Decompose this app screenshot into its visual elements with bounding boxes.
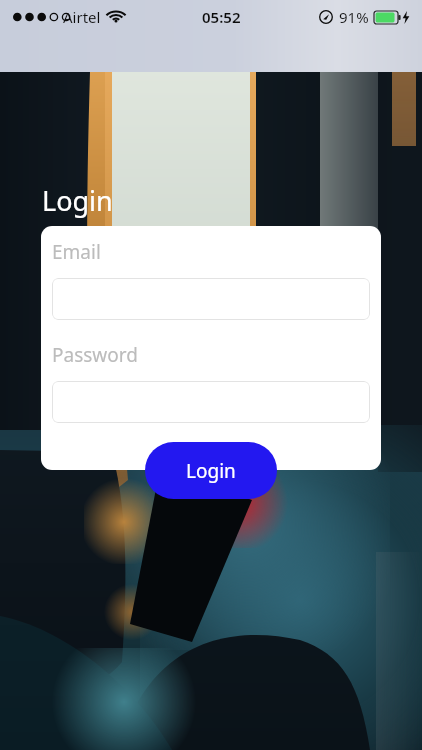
- staticText: Login: [186, 458, 236, 484]
- button[interactable]: Text field: [52, 278, 370, 320]
- staticText: 05:52: [202, 7, 241, 27]
- staticText: Login: [42, 182, 113, 219]
- staticText: 91%: [339, 7, 369, 27]
- button[interactable]: Text field: [52, 381, 370, 423]
- staticText: Airtel: [63, 7, 101, 27]
- staticText: Email: [52, 239, 101, 265]
- button[interactable]: Login: [145, 442, 277, 499]
- staticText: Password: [52, 342, 138, 368]
